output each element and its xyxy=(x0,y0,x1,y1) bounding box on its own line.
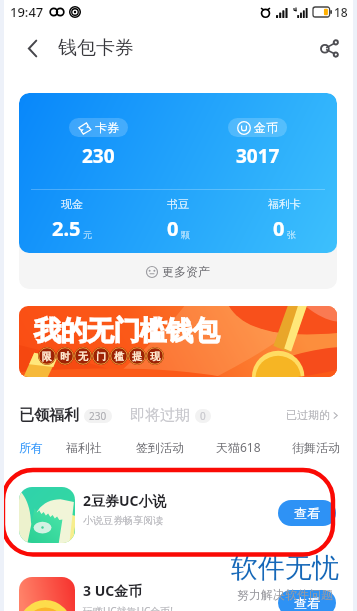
staticText: 玩赚UC就靠UC金币! xyxy=(83,604,173,611)
staticText: 已领福利 xyxy=(19,406,79,425)
button[interactable]: 3 UC金币 xyxy=(0,577,357,611)
staticText: 钱包卡券 xyxy=(58,36,134,60)
button[interactable]: 我的无门槛钱包 xyxy=(19,306,337,377)
staticText: 已过期的 xyxy=(286,408,330,422)
staticText: 3 UC金币 xyxy=(83,581,143,600)
staticText: 230 xyxy=(89,409,107,423)
staticText: 0 xyxy=(167,215,179,242)
staticText: 软件无忧 xyxy=(231,551,339,585)
button[interactable]: 即将过期 xyxy=(130,406,211,425)
staticText: 福利社 xyxy=(66,440,102,455)
staticText: 查看 xyxy=(294,595,320,611)
button[interactable]: 书豆 xyxy=(125,197,231,242)
staticText: 金币 xyxy=(254,120,278,135)
button[interactable]: 所有 xyxy=(13,437,49,457)
button[interactable]: 已过期的 xyxy=(286,408,338,422)
staticText: 小说豆券畅享阅读 xyxy=(83,514,163,527)
staticText: 我的无门槛钱包 xyxy=(34,314,219,348)
button[interactable]: 天猫618 xyxy=(199,437,277,457)
button[interactable]: Back xyxy=(15,31,49,65)
staticText: 努力解决软件问题 xyxy=(237,587,333,602)
staticText: 元 xyxy=(83,229,92,240)
button[interactable]: 2豆券UC小说 xyxy=(0,487,357,543)
staticText: 230 xyxy=(82,143,115,169)
staticText: 无 xyxy=(78,350,88,363)
button[interactable]: 签到活动 xyxy=(128,437,192,457)
staticText: 更多资产 xyxy=(162,264,210,279)
button[interactable]: 福利社 xyxy=(59,437,109,457)
staticText: 签到活动 xyxy=(136,440,184,455)
button[interactable]: 查看 xyxy=(278,590,336,611)
staticText: 0 xyxy=(200,409,206,423)
staticText: 书豆 xyxy=(167,197,189,211)
button[interactable]: 福利卡 xyxy=(231,197,337,242)
staticText: 街舞活动 xyxy=(292,440,340,455)
staticText: 2.5 xyxy=(52,215,81,242)
button[interactable]: 现金 xyxy=(19,197,125,242)
staticText: 18 xyxy=(334,4,348,20)
staticText: 现 xyxy=(150,350,160,363)
staticText: 限 xyxy=(42,350,52,363)
button[interactable]: 街舞活动 xyxy=(284,437,348,457)
button[interactable]: Share xyxy=(311,30,347,66)
staticText: 张 xyxy=(287,229,296,240)
button[interactable]: 已领福利 xyxy=(19,406,112,425)
staticText: 查看 xyxy=(294,505,320,521)
staticText: 0 xyxy=(273,215,285,242)
staticText: 时 xyxy=(60,350,70,363)
staticText: 2豆券UC小说 xyxy=(83,491,167,510)
button[interactable]: 卡券 xyxy=(19,118,178,169)
staticText: 颗 xyxy=(181,229,190,240)
staticText: 所有 xyxy=(19,440,43,455)
staticText: 19:47 xyxy=(10,3,44,21)
staticText: 天猫618 xyxy=(216,439,261,455)
staticText: 门 xyxy=(96,350,106,363)
staticText: 3017 xyxy=(236,143,280,169)
button[interactable]: 更多资产 xyxy=(19,253,337,289)
button[interactable]: 查看 xyxy=(278,500,336,526)
staticText: 槛 xyxy=(114,350,124,363)
button[interactable]: 金币 xyxy=(178,118,337,169)
staticText: 即将过期 xyxy=(130,406,190,425)
staticText: 福利卡 xyxy=(268,197,301,211)
staticText: 提 xyxy=(132,350,142,363)
staticText: 现金 xyxy=(61,197,83,211)
staticText: 卡券 xyxy=(95,120,119,135)
